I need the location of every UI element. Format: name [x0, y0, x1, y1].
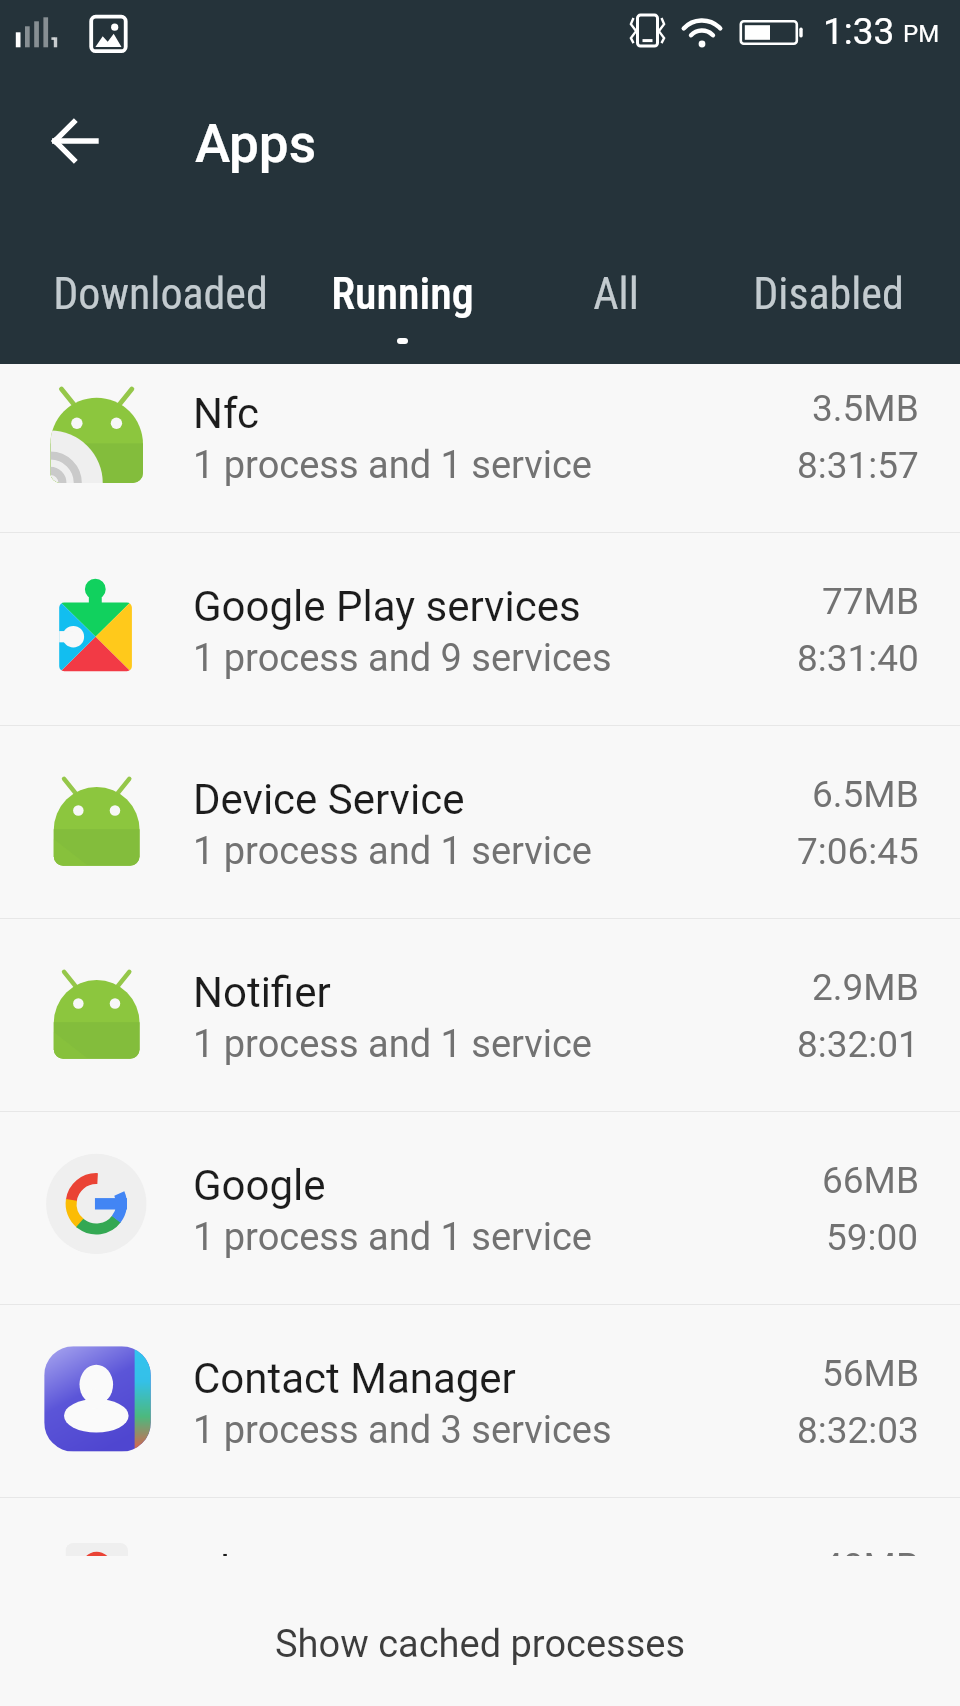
staticText: Disabled — [753, 268, 904, 320]
staticText: Show cached processes — [275, 1622, 686, 1667]
staticText: 59:00 — [826, 1216, 919, 1259]
staticText: Apps — [195, 113, 317, 175]
staticText: Contact Manager — [193, 1354, 516, 1403]
staticText: 8:32:03 — [797, 1409, 919, 1452]
button[interactable]: Chrome — [0, 1498, 960, 1556]
staticText: 1:33 — [823, 10, 895, 53]
staticText: Google — [193, 1161, 326, 1210]
button[interactable]: Show cached processes — [0, 1556, 960, 1706]
staticText: 56MB — [822, 1352, 919, 1395]
staticText: Google Play services — [193, 582, 581, 631]
staticText: 40MB — [822, 1545, 919, 1556]
staticText: 8:32:01 — [797, 1023, 919, 1066]
staticText: 2.9MB — [812, 966, 919, 1009]
button[interactable]: Disabled — [718, 268, 938, 382]
button[interactable]: Back — [28, 95, 120, 187]
button[interactable]: All — [536, 268, 696, 382]
staticText: 1 process and 1 service — [193, 1022, 592, 1067]
staticText: 3.5MB — [812, 387, 919, 430]
button[interactable]: Notifier — [0, 919, 960, 1112]
staticText: 1 process and 3 services — [193, 1408, 612, 1453]
staticText: 1 process and 1 service — [193, 829, 592, 874]
staticText: 6.5MB — [812, 773, 919, 816]
staticText: Running — [331, 268, 474, 320]
button[interactable]: Device Service — [0, 726, 960, 919]
button[interactable]: Contact Manager — [0, 1305, 960, 1498]
staticText: Chrome — [193, 1547, 341, 1556]
staticText: Device Service — [193, 775, 465, 824]
staticText: Downloaded — [53, 268, 268, 320]
staticText: 1 process and 1 service — [193, 443, 592, 488]
staticText: 8:31:40 — [797, 637, 919, 680]
staticText: PM — [903, 20, 940, 48]
staticText: 1 process and 9 services — [193, 636, 612, 681]
button[interactable]: Running — [297, 268, 507, 382]
staticText: All — [593, 268, 639, 320]
button[interactable]: Google — [0, 1112, 960, 1305]
staticText: 66MB — [822, 1159, 919, 1202]
staticText: 7:06:45 — [797, 830, 919, 873]
button[interactable]: Downloaded — [35, 268, 285, 382]
staticText: 1 process and 1 service — [193, 1215, 592, 1260]
staticText: 8:31:57 — [797, 444, 919, 487]
button[interactable]: Nfc — [0, 364, 960, 533]
staticText: Nfc — [193, 389, 260, 438]
button[interactable]: Google Play services — [0, 533, 960, 726]
staticText: 77MB — [822, 580, 919, 623]
staticText: Notifier — [193, 968, 331, 1017]
